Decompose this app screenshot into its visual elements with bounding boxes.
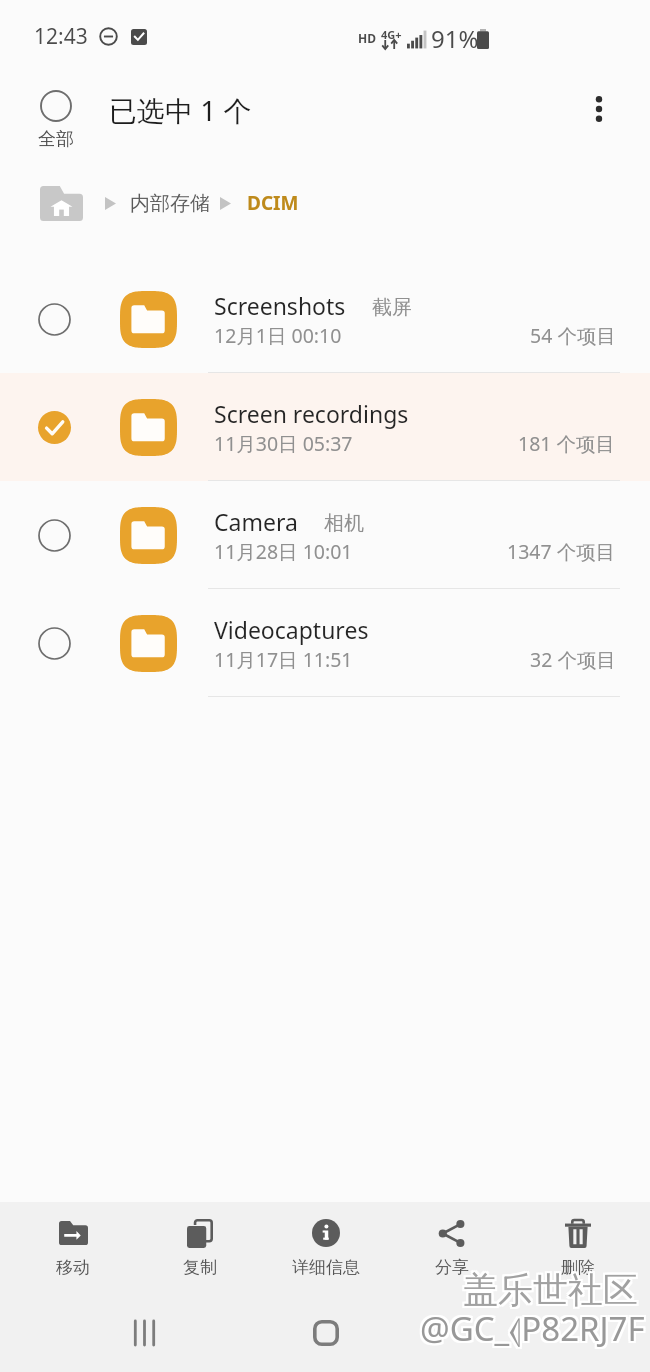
staticText: 181 个项目 [518, 430, 616, 457]
staticText: @GC_⦉P82RJ7F [418, 1306, 643, 1351]
staticText: @GC_⦉P82RJ7F [422, 1308, 647, 1353]
button[interactable]: More options [575, 85, 623, 133]
staticText: 1347 个项目 [507, 538, 616, 565]
staticText: 全部 [38, 128, 74, 151]
staticText: 移动 [56, 1257, 90, 1278]
staticText: 盖乐世社区 [465, 1266, 640, 1310]
staticText: 删除 [561, 1257, 595, 1278]
staticText: 分享 [435, 1257, 469, 1278]
staticText: 54 个项目 [530, 322, 616, 349]
staticText: 盖乐世社区 [465, 1268, 640, 1312]
button[interactable]: Back [474, 1299, 542, 1367]
staticText: 盖乐世社区 [463, 1266, 638, 1310]
staticText: 盖乐世社区 [463, 1270, 638, 1314]
staticText: 盖乐世社区 [463, 1268, 638, 1312]
staticText: 11月28日 10:01 [214, 538, 353, 565]
staticText: @GC_⦉P82RJ7F [418, 1308, 643, 1353]
staticText: 91% [431, 22, 479, 55]
staticText: 4G+ [381, 27, 402, 42]
button[interactable]: 详细信息 [263, 1202, 389, 1294]
button[interactable]: 删除 [515, 1202, 641, 1294]
staticText: 截屏 [372, 295, 412, 320]
button[interactable]: Screen recordings [0, 373, 650, 481]
staticText: Videocaptures [214, 614, 369, 645]
button[interactable]: Camera [0, 481, 650, 589]
staticText: @GC_⦉P82RJ7F [422, 1304, 647, 1349]
staticText: 盖乐世社区 [461, 1266, 636, 1310]
staticText: Screen recordings [214, 398, 409, 429]
staticText: Camera [214, 506, 298, 537]
staticText: 32 个项目 [530, 646, 616, 673]
button[interactable]: Home folder [40, 186, 83, 221]
staticText: 盖乐世社区 [461, 1268, 636, 1312]
staticText: @GC_⦉P82RJ7F [420, 1304, 645, 1349]
staticText: 复制 [183, 1257, 217, 1278]
staticText: @GC_⦉P82RJ7F [420, 1306, 645, 1351]
button[interactable]: DCIM [247, 190, 299, 216]
staticText: @GC_⦉P82RJ7F [422, 1306, 647, 1351]
staticText: 已选中 1 个 [109, 91, 252, 129]
staticText: 详细信息 [292, 1257, 360, 1278]
staticText: 12月1日 00:10 [214, 322, 342, 349]
button[interactable]: Screenshots [0, 265, 650, 373]
button[interactable]: Home [292, 1299, 360, 1367]
button[interactable]: 分享 [389, 1202, 515, 1294]
staticText: 12:43 [34, 22, 88, 51]
button[interactable]: 全部 [22, 89, 90, 152]
staticText: 盖乐世社区 [461, 1270, 636, 1314]
staticText: 盖乐世社区 [465, 1270, 640, 1314]
staticText: 11月30日 05:37 [214, 430, 353, 457]
button[interactable]: 复制 [136, 1202, 263, 1294]
button[interactable]: Recent apps [110, 1299, 178, 1367]
button[interactable]: Videocaptures [0, 589, 650, 697]
staticText: @GC_⦉P82RJ7F [420, 1308, 645, 1353]
staticText: @GC_⦉P82RJ7F [418, 1304, 643, 1349]
staticText: Screenshots [214, 290, 346, 321]
button[interactable]: 内部存储 [130, 191, 210, 216]
staticText: 11月17日 11:51 [214, 646, 353, 673]
staticText: 相机 [324, 511, 364, 536]
staticText: HD [358, 30, 376, 46]
button[interactable]: 移动 [9, 1202, 136, 1294]
